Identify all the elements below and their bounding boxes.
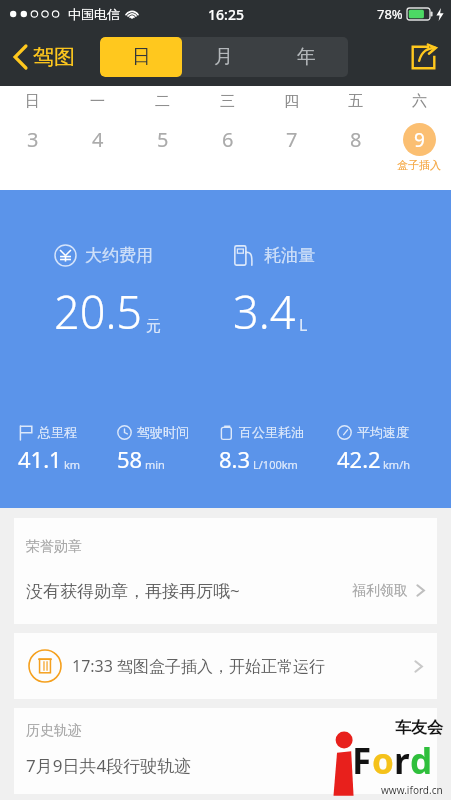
- staticText: d: [410, 737, 433, 785]
- staticText: 月: [214, 45, 233, 69]
- staticText: 中国电信: [68, 6, 120, 22]
- staticText: o: [372, 737, 394, 785]
- staticText: 六: [412, 92, 427, 111]
- button[interactable]: Share: [396, 34, 451, 81]
- staticText: 6: [222, 126, 234, 153]
- staticText: 二: [155, 92, 170, 111]
- staticText: 大约费用: [85, 245, 153, 266]
- staticText: 驾驶时间: [137, 424, 189, 440]
- staticText: 驾图: [33, 44, 75, 70]
- staticText: 四: [284, 92, 299, 111]
- staticText: 元: [146, 317, 161, 336]
- staticText: 百公里耗油: [239, 424, 304, 440]
- button[interactable]: 一: [65, 92, 130, 156]
- button[interactable]: 五: [323, 92, 387, 156]
- staticText: 41.1: [18, 444, 62, 474]
- button[interactable]: 六: [387, 92, 451, 172]
- staticText: 盒子插入: [397, 158, 441, 172]
- staticText: 5: [157, 126, 169, 153]
- staticText: 58: [117, 444, 143, 474]
- staticText: 9: [414, 127, 425, 153]
- staticText: km/h: [383, 457, 411, 472]
- staticText: 荣誉勋章: [26, 538, 82, 556]
- staticText: L/100km: [253, 457, 298, 472]
- staticText: 历史轨迹: [26, 722, 82, 740]
- staticText: 42.2: [337, 444, 381, 474]
- staticText: 17:33 驾图盒子插入，开始正常运行: [72, 655, 326, 677]
- staticText: 20.5: [54, 281, 143, 342]
- staticText: 年: [297, 45, 316, 69]
- staticText: www.iford.cn: [381, 783, 443, 797]
- button[interactable]: 驾图: [0, 38, 83, 76]
- staticText: F: [352, 737, 372, 785]
- staticText: 8: [350, 126, 362, 153]
- staticText: 车友会: [395, 718, 443, 738]
- button[interactable]: 荣誉勋章: [14, 518, 437, 624]
- staticText: 一: [90, 92, 105, 111]
- staticText: km: [64, 457, 81, 472]
- staticText: 耗油量: [264, 245, 315, 266]
- staticText: 78%: [377, 5, 403, 23]
- button[interactable]: 日: [100, 37, 182, 77]
- staticText: 7月9日共4段行驶轨迹: [26, 754, 192, 777]
- staticText: 平均速度: [357, 424, 409, 440]
- staticText: 福利领取: [352, 582, 408, 600]
- staticText: 总里程: [38, 424, 77, 440]
- staticText: 五: [348, 92, 363, 111]
- button[interactable]: 四: [259, 92, 323, 156]
- button[interactable]: 二: [130, 92, 195, 156]
- button[interactable]: 17:33 驾图盒子插入，开始正常运行: [14, 633, 437, 699]
- staticText: 16:25: [208, 5, 244, 24]
- staticText: 日: [132, 45, 151, 69]
- staticText: 3.4: [233, 281, 296, 342]
- staticText: 没有获得勋章，再接再厉哦~: [26, 579, 240, 602]
- button[interactable]: 历史轨迹: [14, 708, 437, 794]
- staticText: 7: [286, 126, 298, 153]
- staticText: 8.3: [219, 444, 251, 474]
- button[interactable]: 日: [0, 92, 65, 156]
- staticText: 4: [92, 126, 104, 153]
- button[interactable]: 年: [265, 37, 348, 77]
- button[interactable]: 三: [195, 92, 259, 156]
- staticText: 3: [27, 126, 39, 153]
- staticText: min: [145, 457, 165, 472]
- staticText: 三: [220, 92, 235, 111]
- staticText: L: [299, 314, 308, 336]
- staticText: r: [394, 737, 410, 785]
- button[interactable]: 月: [182, 37, 265, 77]
- staticText: 日: [25, 92, 40, 111]
